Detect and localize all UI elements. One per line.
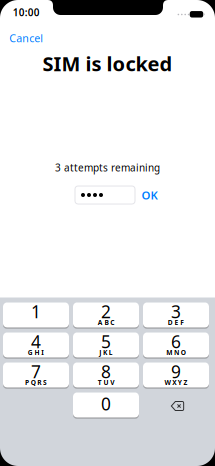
- staticText: V: [110, 378, 114, 387]
- staticText: I: [41, 348, 44, 357]
- staticText: OK: [141, 187, 157, 203]
- staticText: F: [180, 318, 184, 327]
- staticText: 7: [31, 360, 41, 383]
- staticText: G: [28, 348, 33, 357]
- staticText: 0: [101, 392, 111, 415]
- staticText: Q: [31, 378, 36, 387]
- staticText: 6: [171, 330, 181, 353]
- button[interactable]: OK: [141, 187, 157, 203]
- staticText: 4: [31, 330, 41, 353]
- staticText: N: [174, 348, 179, 357]
- button[interactable]: 9: [143, 362, 209, 387]
- staticText: S: [43, 378, 47, 387]
- staticText: 2: [101, 300, 111, 323]
- staticText: 9: [171, 360, 181, 383]
- staticText: O: [181, 348, 186, 357]
- button[interactable]: 2: [73, 302, 139, 327]
- staticText: Y: [178, 378, 182, 387]
- staticText: K: [103, 348, 107, 357]
- staticText: H: [34, 348, 39, 357]
- staticText: Cancel: [9, 31, 43, 45]
- staticText: 1: [31, 300, 41, 323]
- button[interactable]: Cancel: [9, 31, 43, 45]
- button[interactable]: 1: [3, 302, 69, 327]
- staticText: W: [164, 378, 170, 387]
- staticText: D: [168, 318, 173, 327]
- staticText: 5: [101, 330, 111, 353]
- staticText: U: [103, 378, 108, 387]
- staticText: M: [166, 348, 172, 357]
- button[interactable]: 7: [3, 362, 69, 387]
- staticText: 3: [171, 300, 181, 323]
- staticText: T: [98, 378, 102, 387]
- button[interactable]: 3: [143, 302, 209, 327]
- staticText: X: [172, 378, 176, 387]
- button[interactable]: Delete: [144, 393, 210, 418]
- staticText: R: [37, 378, 41, 387]
- button[interactable]: 0: [73, 392, 139, 417]
- staticText: 3 attempts remaining: [55, 161, 160, 174]
- staticText: P: [25, 378, 29, 387]
- button[interactable]: 5: [73, 332, 139, 357]
- button[interactable]: 8: [73, 362, 139, 387]
- button[interactable]: 6: [143, 332, 209, 357]
- staticText: 8: [101, 360, 111, 383]
- staticText: Z: [183, 378, 187, 387]
- staticText: SIM is locked: [42, 50, 172, 77]
- staticText: E: [174, 318, 178, 327]
- staticText: J: [99, 348, 101, 357]
- button[interactable]: 4: [3, 332, 69, 357]
- staticText: B: [104, 318, 108, 327]
- staticText: A: [98, 318, 103, 327]
- staticText: 10:00: [13, 5, 40, 19]
- staticText: L: [109, 348, 113, 357]
- staticText: C: [110, 318, 114, 327]
